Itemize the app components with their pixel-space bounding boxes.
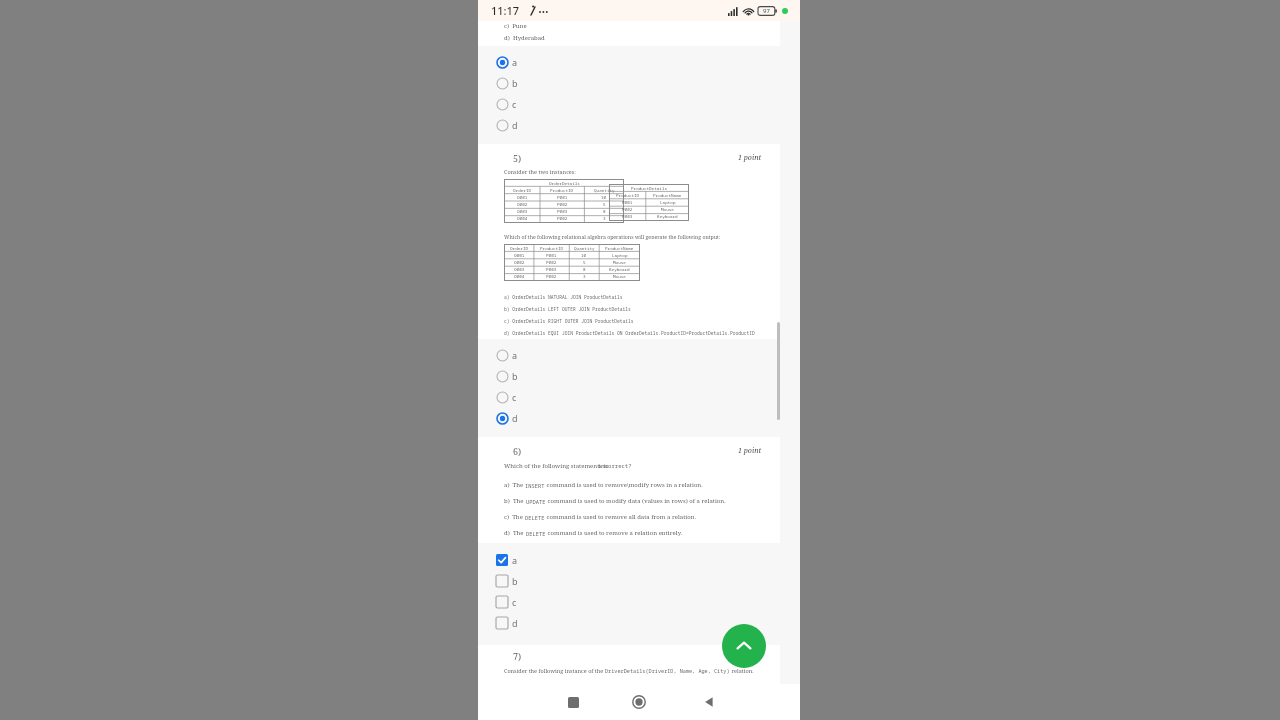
staticText: O001 [517, 194, 528, 200]
staticText: DriverDetails(DriverID, Name, Age, City) [605, 667, 730, 674]
staticText: P002 [622, 206, 633, 212]
staticText: d [512, 617, 518, 629]
staticText: P002 [557, 215, 568, 221]
staticText: Mouse [661, 206, 674, 212]
staticText: b [512, 77, 518, 89]
button[interactable]: c) Pune [478, 21, 780, 46]
staticText: P002 [546, 273, 557, 279]
button[interactable]: Back [689, 684, 729, 720]
staticText: 1 point [738, 446, 762, 456]
staticText: ProductName [605, 245, 634, 251]
button[interactable]: a [496, 550, 556, 570]
staticText: O003 [514, 266, 525, 272]
staticText: relation. [730, 667, 754, 674]
button[interactable]: d [496, 115, 556, 135]
staticText: a) OrderDetails NATURAL JOIN ProductDeta… [504, 294, 623, 300]
staticText: Mouse [613, 273, 626, 279]
staticText: Which of the following statements is [504, 462, 610, 470]
staticText: Laptop [660, 199, 676, 205]
button[interactable]: c [496, 94, 556, 114]
staticText: 11:17 [491, 3, 520, 18]
staticText: P001 [622, 199, 633, 205]
staticText: P003 [557, 208, 568, 214]
button[interactable]: Recent apps [553, 684, 593, 720]
staticText: Mouse [613, 259, 626, 265]
staticText: O004 [514, 273, 525, 279]
staticText: 10 [581, 252, 587, 258]
staticText: Keyboard [609, 266, 630, 272]
staticText: a) The [504, 481, 525, 489]
staticText: Quantity [574, 245, 595, 251]
button[interactable]: c [496, 592, 556, 612]
staticText: P001 [557, 194, 568, 200]
staticText: ProductID [616, 192, 640, 198]
staticText: a [512, 56, 518, 68]
button[interactable]: d [496, 613, 556, 633]
staticText: P001 [546, 252, 557, 258]
staticText: OrderID [510, 245, 529, 251]
staticText: P003 [546, 266, 557, 272]
staticText: 3 [583, 273, 586, 279]
staticText: 1 point [738, 153, 762, 163]
staticText: c [512, 98, 517, 110]
button[interactable]: a [496, 345, 556, 365]
staticText: DELETE [526, 530, 546, 537]
staticText: 1 point [738, 650, 762, 660]
staticText: 8 [603, 208, 606, 214]
staticText: Consider the two instances: [504, 168, 576, 175]
staticText: ProductID [540, 245, 564, 251]
staticText: d [512, 412, 518, 424]
staticText: c) Pune [504, 22, 527, 30]
staticText: 3 [603, 215, 606, 221]
staticText: command is used to remove\modify rows in… [545, 481, 703, 489]
staticText: d) OrderDetails EQUI JOIN ProductDetails… [504, 330, 755, 336]
staticText: command is used to modify data (values i… [546, 497, 726, 505]
staticText: 10 [601, 194, 607, 200]
staticText: c [512, 391, 517, 403]
staticText: 5 [583, 259, 586, 265]
staticText: ProductName [653, 192, 682, 198]
staticText: O002 [517, 201, 528, 207]
staticText: INSERT [525, 482, 545, 489]
button[interactable]: c [496, 387, 556, 407]
button[interactable]: a [496, 52, 556, 72]
staticText: b) The [504, 497, 526, 505]
button[interactable]: b [496, 73, 556, 93]
staticText: UPDATE [526, 498, 546, 505]
staticText: c [512, 596, 517, 608]
staticText: O003 [517, 208, 528, 214]
staticText: ProductID [550, 187, 574, 193]
staticText: b [512, 575, 518, 587]
staticText: P003 [622, 213, 633, 219]
staticText: P002 [557, 201, 568, 207]
button[interactable]: Home [619, 684, 659, 720]
staticText: 97 [763, 7, 770, 15]
button[interactable]: d [496, 408, 556, 428]
staticText: Quantity [594, 187, 615, 193]
staticText: O004 [517, 215, 528, 221]
button[interactable]: Scroll to top [722, 624, 766, 668]
staticText: b) OrderDetails LEFT OUTER JOIN ProductD… [504, 306, 631, 312]
staticText: P002 [546, 259, 557, 265]
staticText: DELETE [525, 514, 545, 521]
staticText: Keyboard [657, 213, 678, 219]
button[interactable]: b [496, 571, 556, 591]
staticText: OrderDetails [549, 180, 580, 186]
staticText: a [512, 554, 518, 566]
staticText: b [512, 370, 518, 382]
staticText: a [512, 349, 518, 361]
staticText: O001 [514, 252, 525, 258]
staticText: Consider the following instance of the [504, 667, 605, 674]
staticText: 5 [603, 201, 606, 207]
staticText: Laptop [612, 252, 628, 258]
staticText: c) The [504, 513, 525, 521]
button[interactable]: b [496, 366, 556, 386]
staticText: ProductDetails [631, 185, 668, 191]
staticText: c) OrderDetails RIGHT OUTER JOIN Product… [504, 318, 634, 324]
staticText: command is used to remove a relation ent… [546, 529, 683, 537]
staticText: d [512, 119, 518, 131]
staticText: OrderID [513, 187, 532, 193]
staticText: d) The [504, 529, 526, 537]
staticText: 6) [513, 445, 522, 457]
staticText: 8 [583, 266, 586, 272]
